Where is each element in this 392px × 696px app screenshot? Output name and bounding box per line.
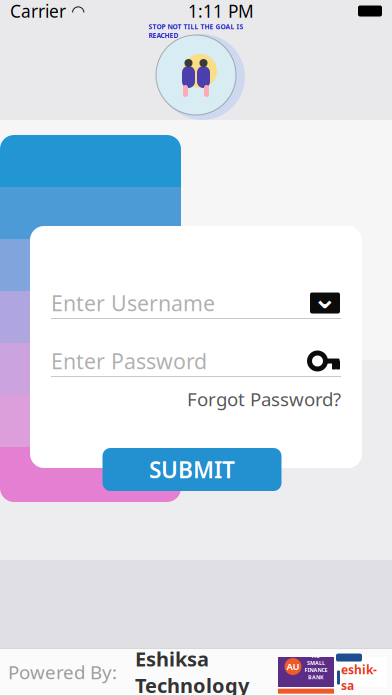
staticText: ◠ xyxy=(66,2,84,20)
button[interactable]: SUBMIT xyxy=(102,448,281,491)
staticText: SMALL xyxy=(307,659,325,666)
staticText: AU xyxy=(286,660,299,673)
staticText: Enter Password xyxy=(51,347,207,375)
staticText: BANK xyxy=(308,674,324,681)
button[interactable]: Forgot Password? xyxy=(51,387,341,411)
staticText: AU xyxy=(312,652,320,659)
staticText: Eshiksa Technology xyxy=(135,645,249,696)
staticText: eshiksa xyxy=(341,662,377,693)
staticText: 1:11 PM xyxy=(188,0,254,22)
staticText: STOP NOT TILL THE GOAL IS REACHED xyxy=(148,22,243,40)
staticText: SUBMIT xyxy=(149,454,235,484)
staticText: ⌄ xyxy=(312,281,337,315)
staticText: Forgot Password? xyxy=(187,387,341,411)
staticText: FINANCE xyxy=(304,666,327,674)
staticText: Carrier xyxy=(10,0,66,22)
staticText: Powered By: xyxy=(8,660,117,684)
staticText: Enter Username xyxy=(51,289,215,317)
